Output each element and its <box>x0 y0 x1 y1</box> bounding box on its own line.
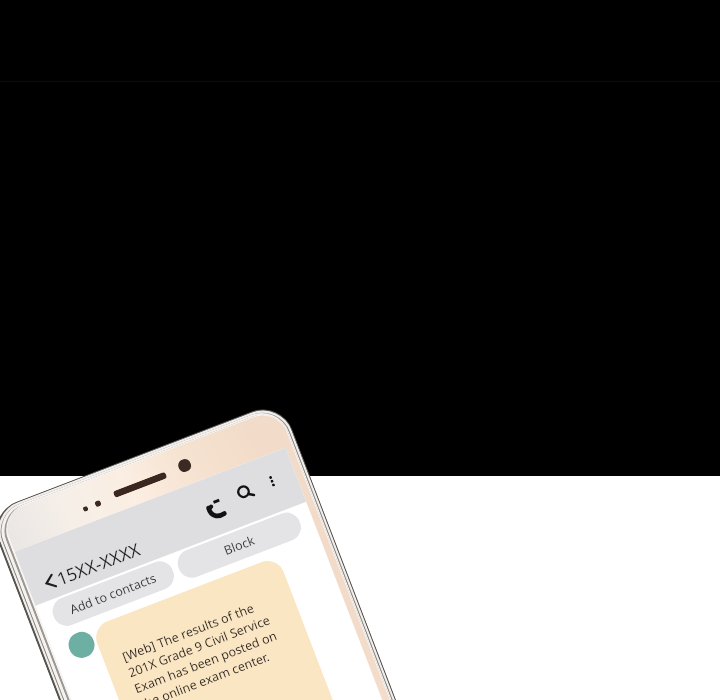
button[interactable]: Search <box>228 475 264 511</box>
button[interactable]: Add to contacts <box>48 557 178 630</box>
button[interactable]: [Web] The results of the 201X Grade 9 Ci… <box>91 556 346 700</box>
staticText: 15XX-XXXX <box>53 536 144 590</box>
staticText: Block <box>221 532 257 559</box>
button[interactable]: 15XX-XXXX <box>39 536 144 596</box>
staticText: Add to contacts <box>67 569 159 618</box>
staticText: [Web] The results of the 201X Grade 9 Ci… <box>120 590 300 700</box>
button[interactable]: More options <box>256 465 288 497</box>
button[interactable]: HD call <box>198 490 235 526</box>
button[interactable]: Block <box>173 508 305 582</box>
